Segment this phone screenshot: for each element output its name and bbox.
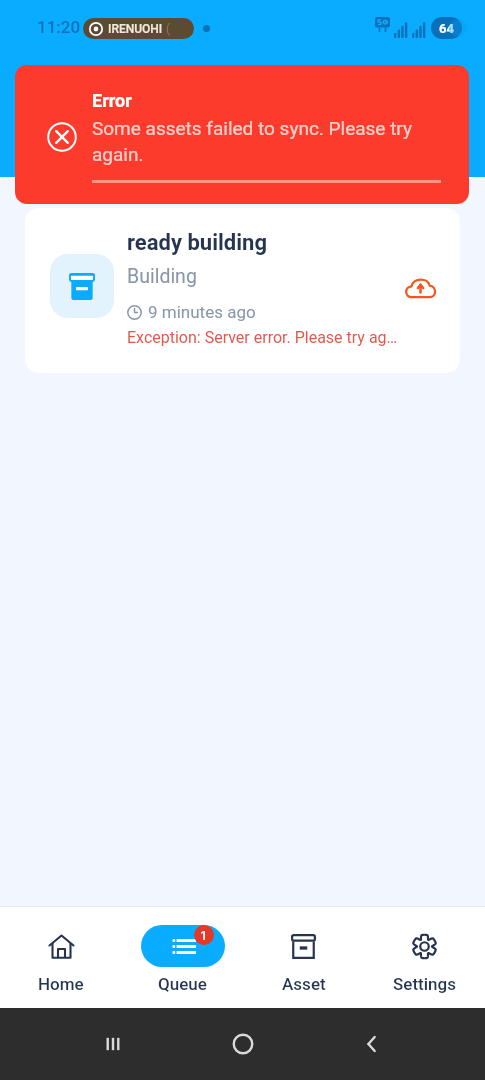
staticText: ready building <box>127 230 267 256</box>
button[interactable]: Settings <box>364 907 485 1008</box>
button[interactable]: Back <box>355 1027 389 1061</box>
staticText: 1 <box>200 928 208 943</box>
staticText: Exception: Server error. Please try ag… <box>127 328 398 347</box>
staticText: 11:20 <box>37 17 81 37</box>
button[interactable]: Upload <box>25 208 460 373</box>
staticText: Home <box>38 974 84 994</box>
staticText: Settings <box>393 974 456 994</box>
button[interactable]: 1 <box>122 907 243 1008</box>
staticText: Error <box>92 90 132 111</box>
staticText: ( <box>166 22 171 36</box>
staticText: 64 <box>439 21 454 36</box>
button[interactable]: Upload <box>402 269 438 305</box>
button[interactable]: Home <box>0 907 122 1008</box>
staticText: Asset <box>282 974 326 994</box>
staticText: Some assets failed to sync. Please try a… <box>92 117 422 165</box>
button[interactable]: Recent apps <box>96 1027 130 1061</box>
staticText: Queue <box>158 974 207 994</box>
staticText: 9 minutes ago <box>148 302 256 322</box>
button[interactable]: Home <box>226 1027 260 1061</box>
staticText: Building <box>127 265 197 288</box>
button[interactable]: Asset <box>243 907 364 1008</box>
staticText: IRENUOHI <box>108 22 163 36</box>
button[interactable]: Error <box>15 65 469 204</box>
